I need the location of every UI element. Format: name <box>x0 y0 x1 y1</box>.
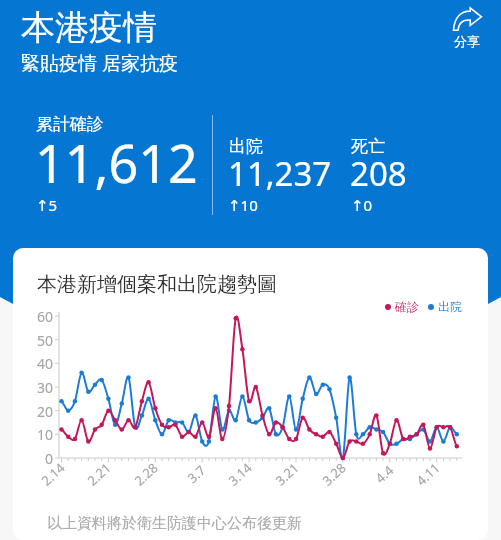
button[interactable]: 分享 <box>447 4 487 51</box>
staticText: 50 <box>36 331 53 350</box>
button[interactable]: 本港新增個案和出院趨勢圖 <box>13 248 488 540</box>
staticText: 40 <box>36 354 53 373</box>
staticText: 2.28 <box>130 459 162 489</box>
staticText: 確診 <box>395 299 419 314</box>
staticText: 3.21 <box>271 459 303 489</box>
staticText: 0 <box>44 449 53 468</box>
staticText: 本港新增個案和出院趨勢圖 <box>37 272 277 297</box>
staticText: 累計確診 <box>36 114 104 135</box>
staticText: ↑5 <box>36 195 58 215</box>
staticText: 分享 <box>454 33 480 49</box>
staticText: 2.21 <box>83 459 115 489</box>
staticText: 4.11 <box>412 459 444 489</box>
staticText: 3.14 <box>224 459 256 489</box>
staticText: 60 <box>36 307 53 326</box>
staticText: 2.14 <box>37 459 69 489</box>
staticText: 本港疫情 <box>21 6 157 49</box>
staticText: 11,612 <box>35 127 198 198</box>
staticText: 4.4 <box>371 461 398 487</box>
staticText: 11,237 <box>228 151 332 196</box>
staticText: ↑0 <box>351 195 373 215</box>
staticText: 3.7 <box>183 461 210 487</box>
staticText: 死亡 <box>351 136 385 157</box>
staticText: 緊貼疫情 居家抗疫 <box>21 50 178 76</box>
staticText: 出院 <box>438 299 462 314</box>
staticText: 30 <box>36 378 53 397</box>
staticText: 208 <box>350 151 407 196</box>
staticText: ↑10 <box>228 195 258 215</box>
staticText: 3.28 <box>318 459 350 489</box>
staticText: 出院 <box>229 136 263 157</box>
staticText: 20 <box>36 402 53 421</box>
staticText: 10 <box>36 425 53 444</box>
staticText: 以上資料將於衛生防護中心公布後更新 <box>47 514 302 533</box>
